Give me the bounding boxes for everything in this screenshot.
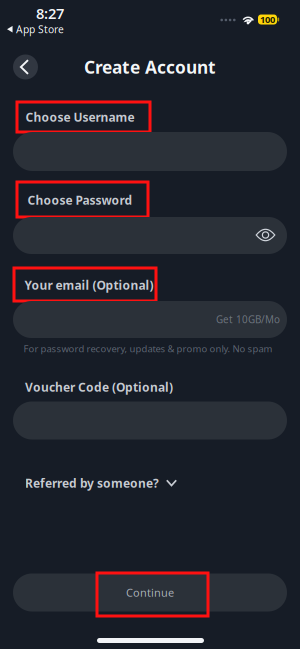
button[interactable]: Referred by someone? [25, 472, 185, 494]
staticText: Get 10GB/Mo [216, 313, 280, 326]
staticText: App Store [16, 22, 64, 36]
staticText: 8:27 [36, 4, 64, 23]
staticText: 100 [260, 13, 275, 26]
staticText: Continue [126, 585, 174, 600]
staticText: Voucher Code (Optional) [25, 379, 173, 395]
staticText: Choose Username [25, 109, 134, 125]
button[interactable]: App Store [7, 23, 64, 36]
staticText: Your email (Optional) [24, 277, 153, 293]
staticText: Choose Password [27, 192, 132, 208]
staticText: Create Account [84, 55, 216, 78]
button[interactable]: Show password [251, 222, 279, 248]
staticText: For password recovery, updates & promo o… [23, 342, 272, 355]
button[interactable]: Back [13, 54, 38, 79]
button[interactable]: Continue [13, 573, 287, 611]
staticText: Referred by someone? [25, 475, 159, 491]
